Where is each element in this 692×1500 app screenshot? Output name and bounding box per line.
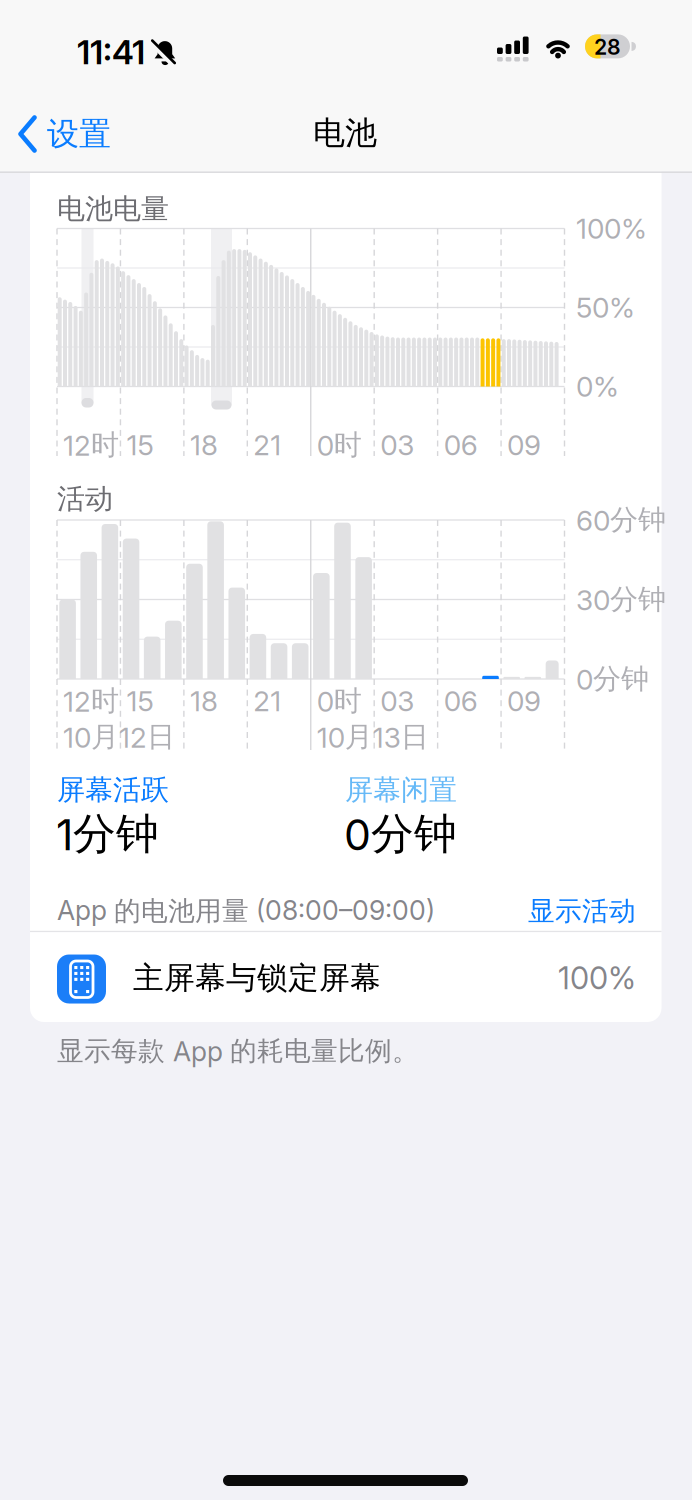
- staticText: 06: [444, 684, 478, 717]
- staticText: 0%: [576, 370, 619, 403]
- staticText: 30分钟: [576, 582, 666, 617]
- staticText: 12时: [63, 684, 119, 718]
- staticText: 18: [190, 428, 218, 461]
- staticText: 03: [380, 428, 414, 461]
- staticText: 屏幕闲置: [345, 773, 457, 807]
- staticText: 0分钟: [576, 662, 649, 696]
- staticText: App 的电池用量 (08:00–09:00): [57, 894, 435, 927]
- staticText: 1分钟: [56, 808, 159, 860]
- staticText: 11:41: [77, 32, 145, 72]
- staticText: 06: [444, 428, 478, 461]
- staticText: 10月12日: [63, 720, 175, 754]
- staticText: 设置: [47, 114, 111, 154]
- staticText: 0分钟: [344, 808, 457, 860]
- staticText: 0时: [317, 428, 362, 462]
- staticText: 21: [253, 428, 281, 461]
- staticText: 28: [594, 34, 621, 59]
- staticText: 电池: [313, 113, 377, 153]
- button[interactable]: 主屏幕与锁定屏幕: [30, 932, 661, 1023]
- staticText: 显示活动: [528, 895, 636, 927]
- staticText: 15: [126, 684, 153, 717]
- staticText: 屏幕活跃: [57, 773, 169, 807]
- staticText: 活动: [57, 482, 113, 516]
- button[interactable]: 显示活动: [486, 889, 636, 933]
- staticText: 21: [253, 684, 281, 717]
- staticText: 电池电量: [57, 192, 169, 226]
- staticText: 03: [380, 684, 414, 717]
- staticText: 显示每款 App 的耗电量比例。: [57, 1035, 419, 1067]
- staticText: 60分钟: [576, 503, 666, 537]
- staticText: 50%: [576, 291, 635, 324]
- staticText: 15: [126, 428, 153, 461]
- staticText: 100%: [558, 960, 636, 996]
- staticText: 100%: [576, 212, 647, 245]
- staticText: 09: [507, 684, 541, 717]
- button[interactable]: 返回设置: [18, 112, 111, 156]
- staticText: 12时: [63, 428, 119, 462]
- staticText: 18: [190, 684, 218, 717]
- staticText: 主屏幕与锁定屏幕: [133, 959, 381, 997]
- staticText: 10月13日: [317, 720, 429, 754]
- staticText: 09: [507, 428, 541, 461]
- staticText: 0时: [317, 684, 362, 718]
